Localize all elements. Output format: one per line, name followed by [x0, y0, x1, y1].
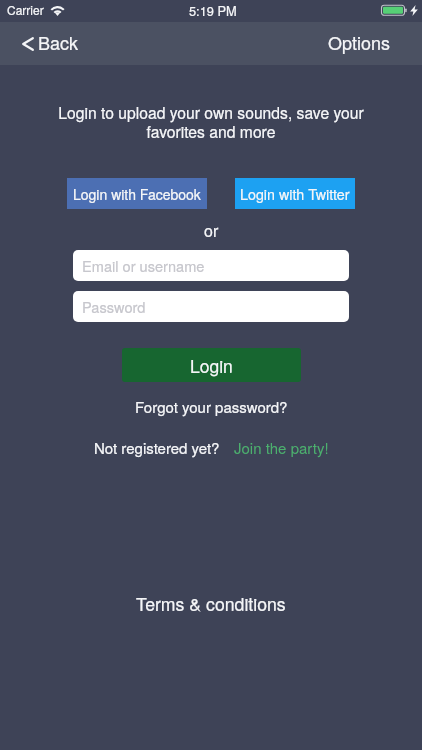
button[interactable]: Options — [312, 20, 422, 63]
staticText: Options — [328, 29, 390, 55]
other: Wi-Fi signal — [50, 4, 65, 16]
button[interactable]: Login — [122, 348, 301, 382]
button[interactable]: Terms & conditions — [126, 585, 296, 621]
button[interactable]: Back — [0, 20, 95, 63]
staticText: Login with Facebook — [73, 184, 201, 204]
button[interactable]: Login with Twitter — [235, 178, 355, 209]
other: Battery charging — [381, 4, 408, 16]
button[interactable]: Email or username — [73, 250, 349, 281]
button[interactable]: Forgot your password? — [125, 389, 298, 423]
staticText: Email or username — [82, 255, 205, 276]
button[interactable]: Login with Facebook — [67, 178, 207, 209]
staticText: Forgot your password? — [135, 396, 288, 417]
staticText: Login to upload your own sounds, save yo… — [55, 101, 367, 142]
staticText: Login — [190, 353, 233, 378]
staticText: Join the party! — [234, 437, 329, 458]
staticText: Password — [82, 296, 146, 317]
staticText: Carrier — [7, 1, 44, 18]
button[interactable]: Password — [73, 291, 349, 322]
staticText: Login with Twitter — [240, 184, 350, 204]
staticText: Terms & conditions — [136, 591, 286, 616]
button[interactable]: Join the party! — [220, 430, 329, 464]
staticText: 5:19 PM — [189, 1, 237, 19]
staticText: Back — [38, 29, 79, 55]
staticText: or — [204, 219, 219, 242]
staticText: Not registered yet? — [94, 437, 220, 458]
